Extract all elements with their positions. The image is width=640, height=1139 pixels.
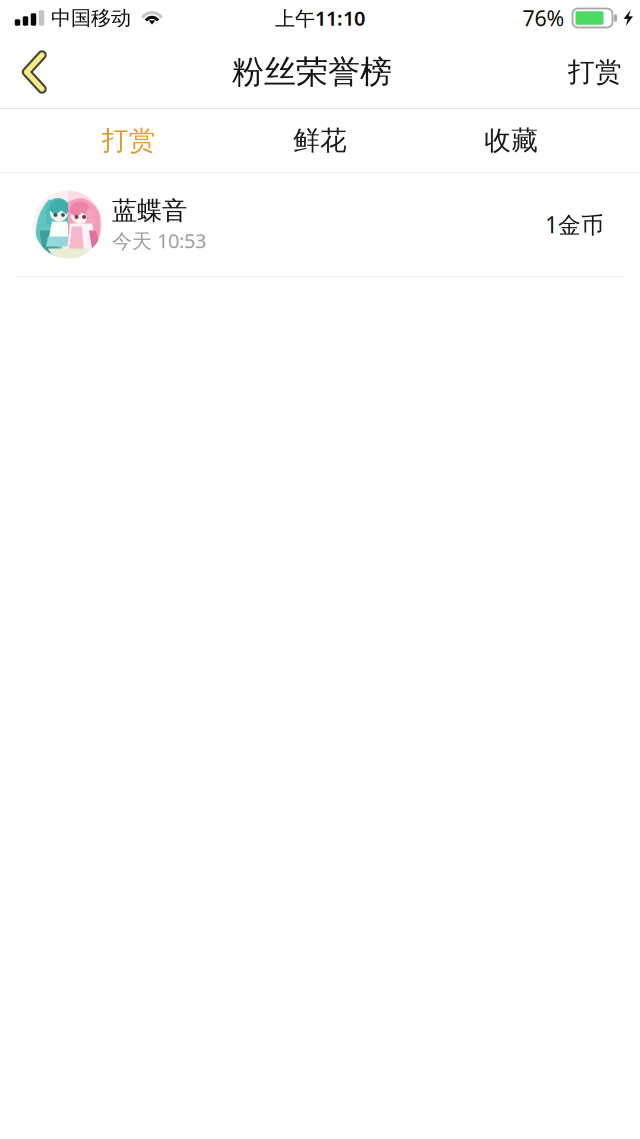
staticText: 中国移动 — [51, 6, 131, 30]
button[interactable]: 收藏 — [416, 109, 607, 172]
staticText: 鲜花 — [293, 124, 347, 157]
staticText: 1金币 — [545, 209, 604, 239]
staticText: 粉丝荣誉榜 — [232, 52, 392, 92]
staticText: 今天 10:53 — [112, 227, 206, 254]
button[interactable]: 蓝蝶音 — [0, 173, 640, 277]
staticText: 上午11:10 — [275, 5, 365, 31]
button[interactable]: 打赏 — [33, 109, 224, 172]
button[interactable]: 返回 — [0, 41, 68, 103]
staticText: 收藏 — [484, 124, 538, 157]
button[interactable]: 打赏 — [546, 44, 640, 100]
button[interactable]: 鲜花 — [224, 109, 416, 172]
staticText: 打赏 — [568, 56, 622, 88]
staticText: 76% — [522, 4, 564, 32]
staticText: 打赏 — [102, 124, 156, 157]
staticText: 蓝蝶音 — [112, 195, 187, 226]
